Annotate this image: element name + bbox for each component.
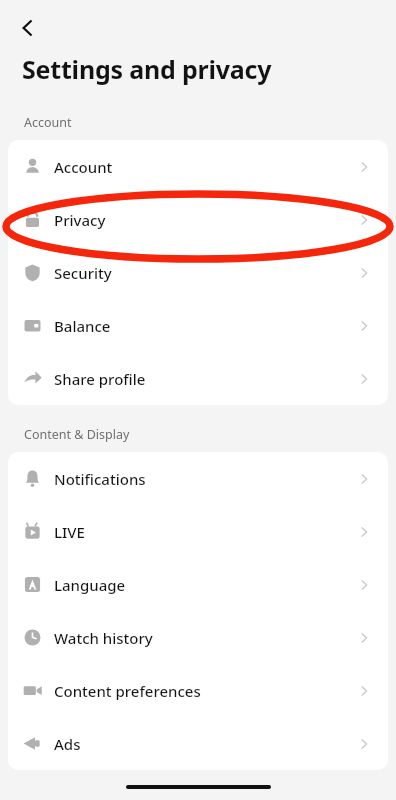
staticText: Content & Display (24, 426, 130, 443)
staticText: Balance (54, 316, 356, 336)
button[interactable]: Account (8, 140, 388, 193)
button[interactable]: Notifications (8, 452, 388, 505)
staticText: Settings and privacy (22, 52, 272, 86)
staticText: Security (54, 263, 356, 283)
staticText: Language (54, 575, 356, 595)
staticText: Account (24, 114, 72, 131)
button[interactable]: Ads (8, 717, 388, 770)
staticText: Notifications (54, 469, 356, 489)
button[interactable]: Watch history (8, 611, 388, 664)
staticText: Content preferences (54, 681, 356, 701)
staticText: Privacy (54, 210, 356, 230)
button[interactable]: Privacy (8, 193, 388, 246)
button[interactable]: Language (8, 558, 388, 611)
button[interactable]: Content preferences (8, 664, 388, 717)
button[interactable]: Balance (8, 299, 388, 352)
staticText: Watch history (54, 628, 356, 648)
button[interactable]: Security (8, 246, 388, 299)
staticText: Share profile (54, 369, 356, 389)
button[interactable]: Share profile (8, 352, 388, 405)
staticText: Account (54, 157, 356, 177)
staticText: Ads (54, 734, 356, 754)
button[interactable]: Back (6, 6, 50, 50)
staticText: LIVE (54, 522, 356, 542)
button[interactable]: LIVE (8, 505, 388, 558)
